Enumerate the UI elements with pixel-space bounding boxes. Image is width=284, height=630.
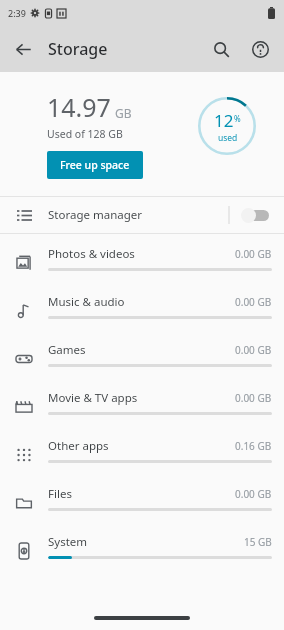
button[interactable]: Back xyxy=(4,30,42,68)
staticText: 0.00 GB xyxy=(235,391,272,405)
staticText: 12 xyxy=(214,109,234,132)
staticText: 2:39 xyxy=(8,7,26,19)
button[interactable]: Movie & TV apps xyxy=(0,378,284,426)
staticText: 0.00 GB xyxy=(235,487,272,501)
staticText: used xyxy=(218,132,238,144)
button[interactable]: Games xyxy=(0,330,284,378)
staticText: 0.00 GB xyxy=(235,343,272,357)
staticText: 0.00 GB xyxy=(235,247,272,261)
staticText: GB xyxy=(115,105,132,121)
button[interactable]: Free up space xyxy=(47,151,143,179)
staticText: Files xyxy=(48,486,72,502)
button[interactable]: Music & audio xyxy=(0,282,284,330)
staticText: Free up space xyxy=(60,158,130,172)
button[interactable]: Files xyxy=(0,474,284,522)
staticText: 15 GB xyxy=(244,535,272,549)
staticText: Other apps xyxy=(48,438,109,454)
button[interactable]: System xyxy=(0,522,284,570)
button[interactable]: Storage manager toggle xyxy=(240,202,274,228)
button[interactable]: Other apps xyxy=(0,426,284,474)
button[interactable]: Help xyxy=(241,30,279,68)
staticText: Movie & TV apps xyxy=(48,390,138,406)
staticText: 0.00 GB xyxy=(235,295,272,309)
button[interactable]: Photos & videos xyxy=(0,234,284,282)
staticText: % xyxy=(234,113,241,124)
staticText: 14.97 xyxy=(47,90,111,124)
staticText: Games xyxy=(48,342,86,358)
button[interactable]: Search xyxy=(202,30,240,68)
button[interactable]: Storage manager xyxy=(0,197,284,233)
staticText: Storage xyxy=(48,38,108,60)
staticText: Used of 128 GB xyxy=(47,127,123,141)
staticText: Photos & videos xyxy=(48,246,135,262)
staticText: Music & audio xyxy=(48,294,125,310)
staticText: Storage manager xyxy=(48,207,228,223)
staticText: 0.16 GB xyxy=(235,439,272,453)
staticText: System xyxy=(48,534,88,550)
